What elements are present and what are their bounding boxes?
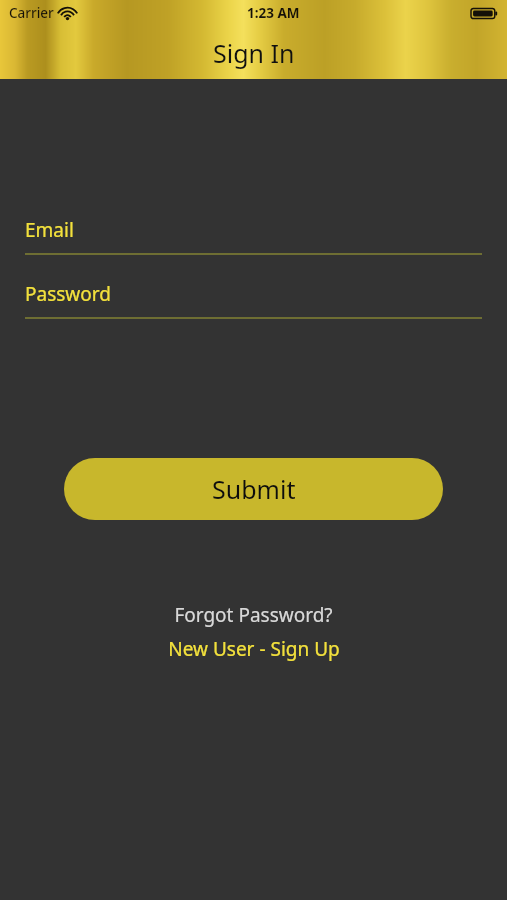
- staticText: Carrier: [9, 4, 54, 22]
- staticText: Email: [25, 217, 74, 243]
- button[interactable]: Password: [25, 275, 482, 319]
- staticText: Submit: [212, 472, 296, 506]
- button[interactable]: New User - Sign Up: [0, 636, 507, 662]
- staticText: Password: [25, 281, 111, 307]
- button[interactable]: Email: [25, 211, 482, 255]
- button[interactable]: Forgot Password?: [0, 602, 507, 628]
- button[interactable]: Submit: [64, 458, 443, 520]
- staticText: 1:23 AM: [247, 4, 300, 22]
- staticText: Sign In: [213, 36, 295, 70]
- staticText: Forgot Password?: [174, 602, 333, 628]
- staticText: New User - Sign Up: [168, 636, 340, 662]
